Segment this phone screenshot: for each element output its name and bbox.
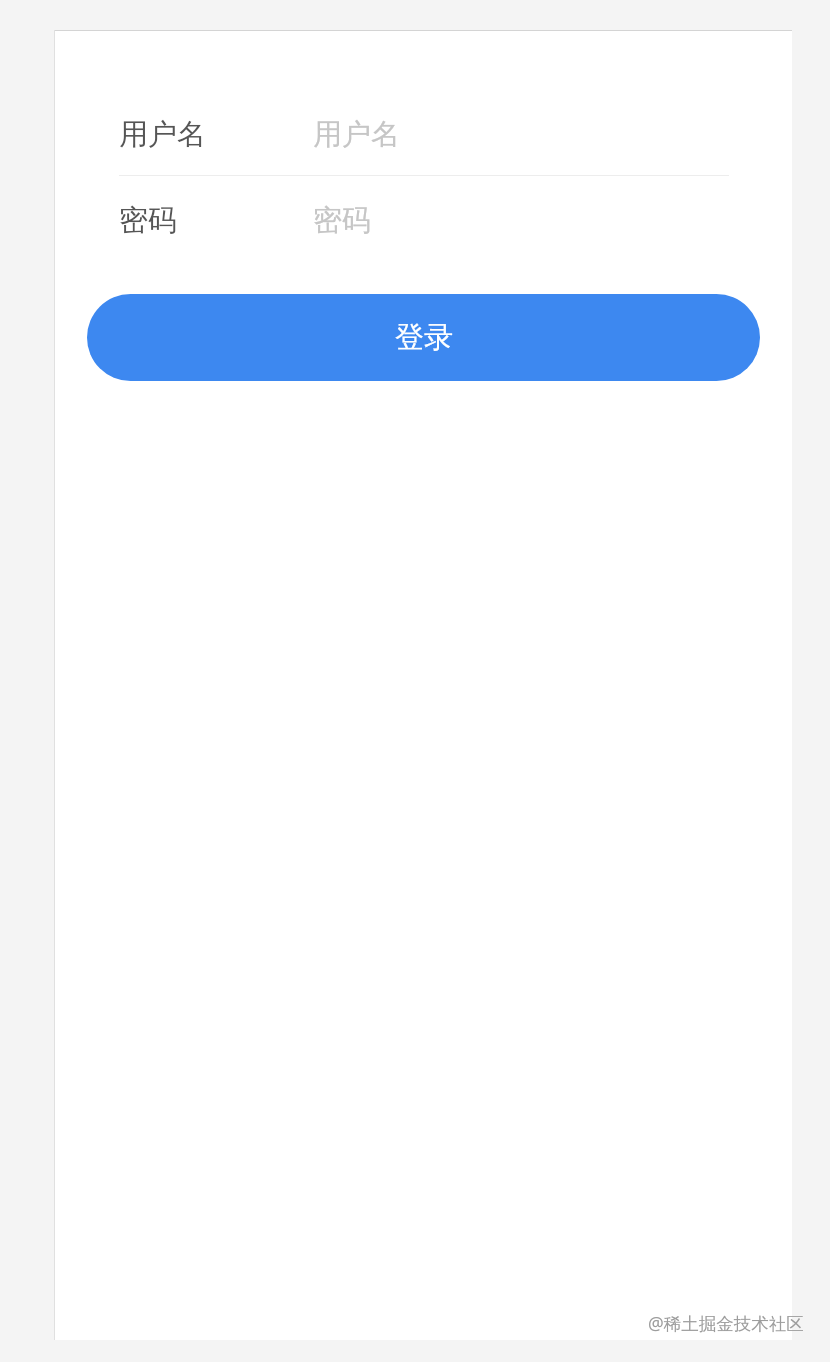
button[interactable]: 登录 [87, 294, 760, 381]
staticText: 密码 [313, 202, 371, 239]
staticText: 用户名 [313, 116, 400, 153]
staticText: 用户名 [119, 116, 206, 153]
staticText: @稀土掘金技术社区 [648, 1311, 804, 1335]
button[interactable]: 用户名 [119, 102, 729, 172]
staticText: 登录 [395, 319, 453, 356]
button[interactable]: 密码 [119, 188, 729, 258]
staticText: 密码 [119, 202, 177, 239]
